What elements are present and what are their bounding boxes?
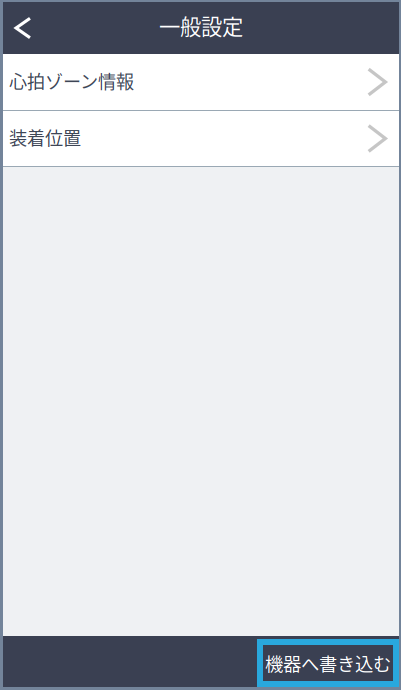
staticText: 機器へ書き込む [265,650,391,676]
button[interactable]: 装着位置 [3,111,399,166]
staticText: 一般設定 [159,10,243,41]
staticText: 心拍ゾーン情報 [9,67,134,94]
button[interactable]: Back [3,6,43,50]
button[interactable]: 機器へ書き込む [257,639,399,687]
staticText: 装着位置 [9,124,81,150]
button[interactable]: 心拍ゾーン情報 [3,54,399,110]
